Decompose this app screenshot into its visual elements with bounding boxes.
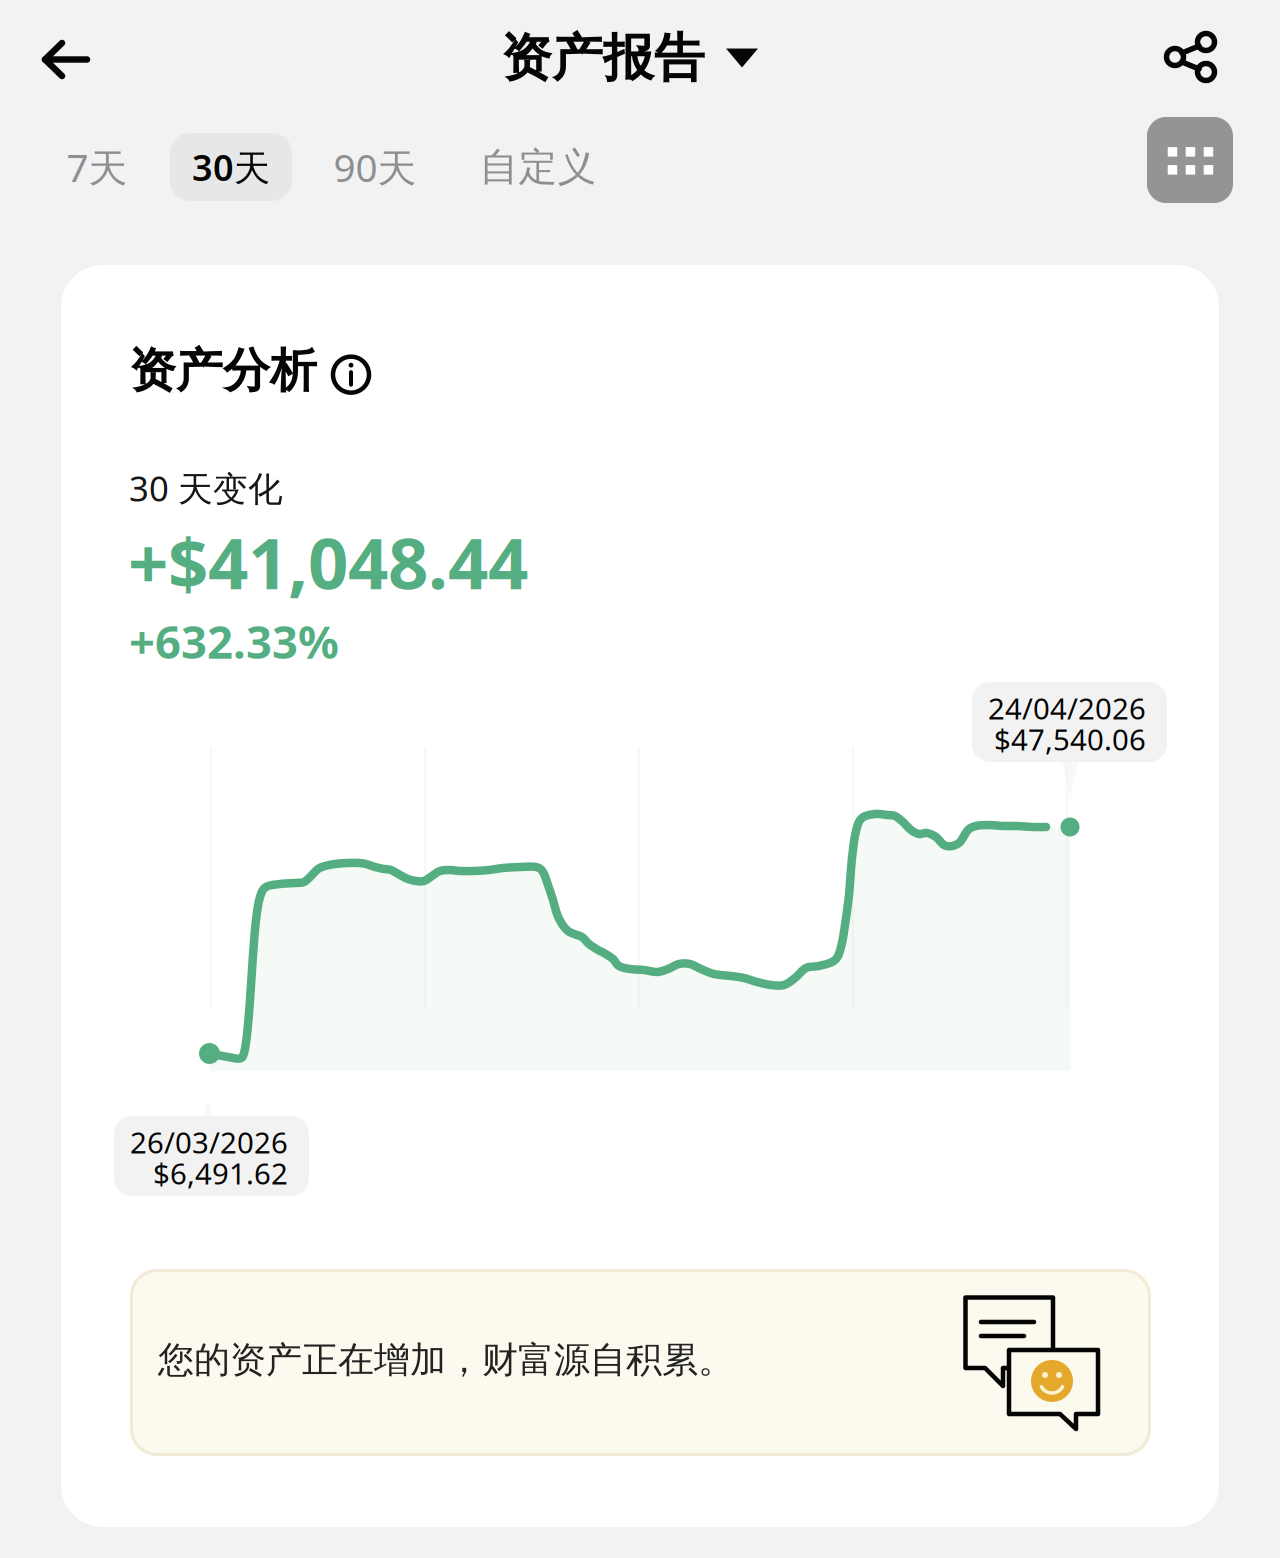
button[interactable]: Back bbox=[0, 0, 110, 112]
staticText: 资产报告 bbox=[501, 27, 705, 89]
staticText: +632.33% bbox=[129, 611, 339, 671]
staticText: $47,540.06 bbox=[994, 719, 1146, 758]
staticText: 30天 bbox=[192, 143, 270, 191]
button[interactable]: Share bbox=[1150, 0, 1260, 112]
button[interactable]: Grid view bbox=[1147, 117, 1233, 203]
staticText: 您的资产正在增加，财富源自积累。 bbox=[158, 1338, 734, 1382]
button[interactable]: 资产报告 bbox=[501, 0, 801, 112]
staticText: 7天 bbox=[66, 141, 127, 193]
button[interactable]: 90天 bbox=[320, 133, 430, 201]
staticText: 自定义 bbox=[479, 143, 596, 191]
staticText: 30 天变化 bbox=[129, 465, 283, 511]
staticText: 资产分析 bbox=[129, 342, 317, 399]
button[interactable]: 30天 bbox=[170, 133, 292, 201]
staticText: 24/04/2026 bbox=[988, 688, 1146, 727]
staticText: 90天 bbox=[333, 141, 416, 193]
staticText: 26/03/2026 bbox=[130, 1122, 288, 1161]
button[interactable]: 7天 bbox=[42, 133, 152, 201]
staticText: +$41,048.44 bbox=[128, 515, 528, 609]
button[interactable]: 自定义 bbox=[468, 133, 608, 201]
staticText: $6,491.62 bbox=[153, 1153, 288, 1192]
